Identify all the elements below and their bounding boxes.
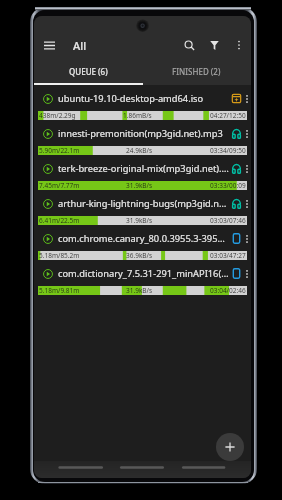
button[interactable]: innesti-premonition(mp3gid.net).mp3: [34, 122, 251, 157]
button[interactable]: Open navigation drawer: [34, 23, 64, 67]
staticText: 03:03/07:46: [210, 216, 246, 225]
button[interactable]: Add download: [216, 433, 244, 461]
button[interactable]: Item menu: [243, 161, 251, 176]
button[interactable]: Item menu: [243, 91, 251, 106]
staticText: 36.9kB/s: [126, 251, 153, 260]
button[interactable]: arthur-king-lightning-bugs(mp3gid.net)…: [34, 192, 251, 227]
staticText: 5.18m/85.2m: [39, 251, 80, 260]
staticText: ubuntu-19.10-desktop-amd64.iso: [58, 92, 230, 105]
staticText: 6.41m/22.5m: [39, 216, 80, 225]
staticText: 31.9kB/s: [126, 286, 153, 295]
staticText: QUEUE (6): [69, 66, 108, 77]
staticText: 5.18m/9.81m: [39, 286, 80, 295]
staticText: 31.9kB/s: [126, 181, 153, 190]
staticText: terk-breeze-original-mix(mp3gid.net).m…: [58, 162, 230, 175]
staticText: 5.90m/22.1m: [39, 146, 80, 155]
button[interactable]: Item menu: [243, 196, 251, 211]
staticText: 03:33/00:09: [210, 181, 246, 190]
button[interactable]: com.dictionary_7.5.31-291_minAPI16(n…: [34, 262, 251, 297]
button[interactable]: Search: [176, 23, 202, 67]
staticText: 04:27/12:50: [210, 111, 246, 120]
staticText: 438m/2.29g: [39, 111, 76, 120]
staticText: 03:34/09:50: [210, 146, 246, 155]
staticText: innesti-premonition(mp3gid.net).mp3: [58, 127, 230, 140]
staticText: com.chrome.canary_80.0.3955.3-3955…: [58, 232, 230, 245]
staticText: arthur-king-lightning-bugs(mp3gid.net)…: [58, 197, 230, 210]
staticText: 03:04/02:46: [210, 286, 246, 295]
staticText: 1.86mB/s: [123, 111, 152, 120]
staticText: 24.9kB/s: [126, 146, 153, 155]
button[interactable]: More options: [227, 23, 251, 67]
button[interactable]: ubuntu-19.10-desktop-amd64.iso: [34, 87, 251, 122]
button[interactable]: QUEUE (6): [34, 59, 142, 84]
button[interactable]: com.chrome.canary_80.0.3955.3-3955…: [34, 227, 251, 262]
button[interactable]: Item menu: [243, 266, 251, 281]
staticText: 03:03/47:27: [210, 251, 246, 260]
staticText: 31.9kB/s: [126, 216, 153, 225]
button[interactable]: Item menu: [243, 126, 251, 141]
staticText: com.dictionary_7.5.31-291_minAPI16(n…: [58, 267, 230, 280]
staticText: FINISHED (2): [172, 66, 221, 77]
staticText: All: [73, 38, 87, 53]
button[interactable]: Item menu: [243, 231, 251, 246]
button[interactable]: terk-breeze-original-mix(mp3gid.net).m…: [34, 157, 251, 192]
staticText: 7.45m/7.77m: [39, 181, 80, 190]
button[interactable]: Filter: [202, 23, 227, 67]
button[interactable]: FINISHED (2): [142, 59, 251, 84]
